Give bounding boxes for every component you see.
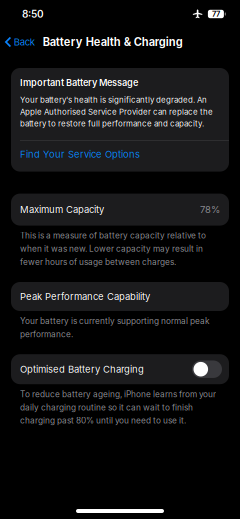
staticText: Your battery's health is significantly d… <box>20 95 213 128</box>
staticText: Peak Performance Capability <box>20 291 150 302</box>
button[interactable]: Back <box>0 28 38 56</box>
staticText: Back <box>14 36 35 48</box>
staticText: Find Your Service Options <box>20 149 140 160</box>
button[interactable]: Find Your Service Options <box>11 141 229 172</box>
staticText: 78% <box>200 204 220 215</box>
button[interactable]: Optimised Battery Charging <box>192 360 222 378</box>
staticText: Battery Health & Charging <box>43 35 183 49</box>
staticText: To reduce battery ageing, iPhone learns … <box>20 389 216 426</box>
staticText: 8:50 <box>22 8 44 20</box>
staticText: 77 <box>212 9 220 18</box>
staticText: Important Battery Message <box>20 77 138 88</box>
staticText: This is a measure of battery capacity re… <box>20 231 206 267</box>
staticText: Your battery is currently supporting nor… <box>20 316 210 339</box>
staticText: Maximum Capacity <box>20 204 104 215</box>
staticText: Optimised Battery Charging <box>20 363 144 375</box>
